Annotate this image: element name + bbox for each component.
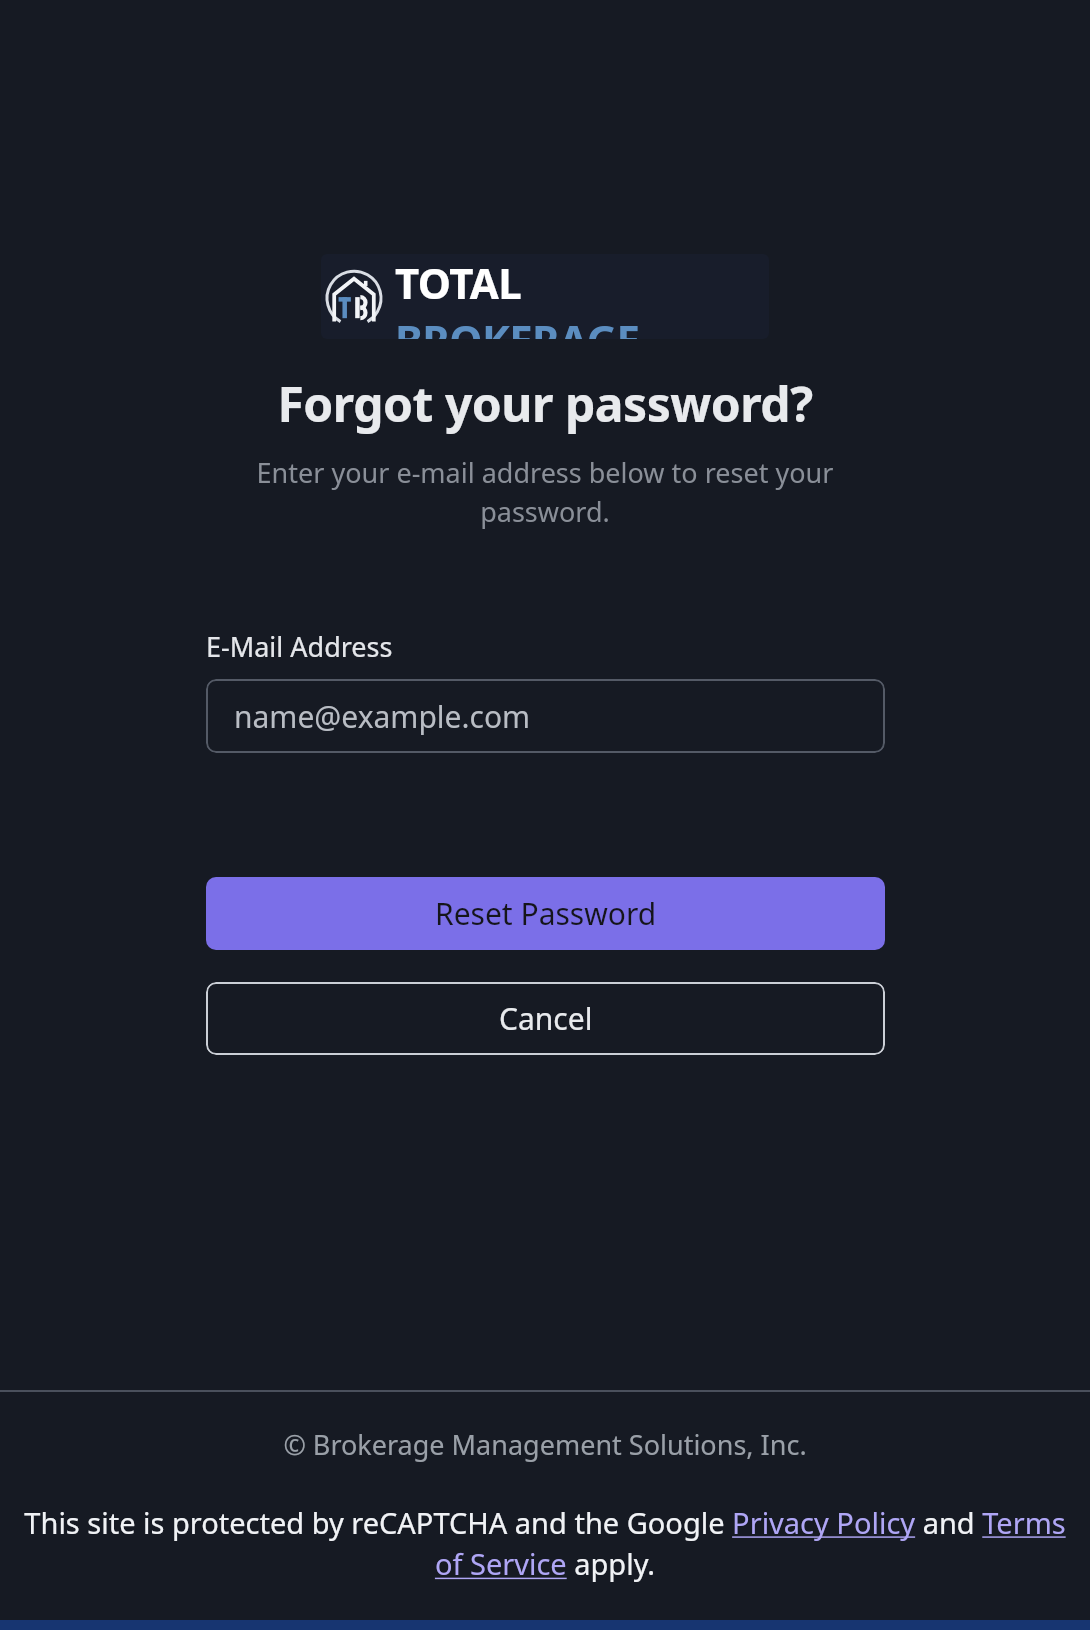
staticText: name@example.com: [234, 696, 531, 737]
button[interactable]: name@example.com: [206, 679, 885, 753]
staticText: Forgot your password?: [277, 371, 813, 436]
staticText: This site is protected by reCAPTCHA and …: [12, 1503, 1078, 1584]
staticText: © Brokerage Management Solutions, Inc.: [283, 1426, 807, 1463]
staticText: Enter your e-mail address below to reset…: [245, 454, 845, 530]
other: Total Brokerage logo: [321, 267, 387, 327]
staticText: Cancel: [499, 998, 593, 1039]
button[interactable]: Cancel: [206, 982, 885, 1055]
button[interactable]: Reset Password: [206, 877, 885, 950]
staticText: E-Mail Address: [206, 628, 393, 665]
staticText: Reset Password: [435, 893, 657, 934]
staticText: TOTAL BROKERAGE: [395, 254, 769, 339]
